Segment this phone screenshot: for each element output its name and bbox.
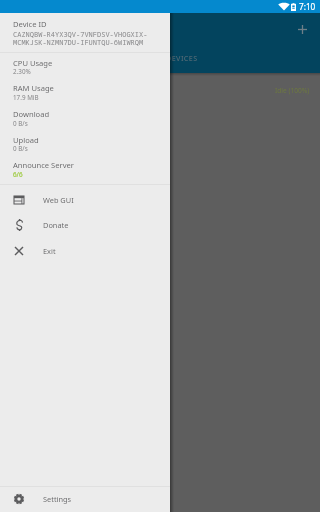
staticText: Donate (43, 220, 69, 230)
button[interactable]: Add device (291, 18, 314, 41)
staticText: 17.9 MiB (13, 93, 39, 102)
button[interactable]: Settings (0, 486, 170, 511)
button[interactable]: DEVICES (136, 46, 228, 70)
staticText: DEVICES (166, 53, 198, 63)
button[interactable]: Exit (0, 238, 170, 263)
staticText: Web GUI (43, 195, 74, 205)
staticText: Device ID (13, 19, 47, 29)
staticText: 0 B/s (13, 119, 28, 128)
staticText: CAZNQBW-R4YX3QV-7VNFDSV-VHOGXIX- MCMKJSK… (13, 30, 148, 47)
staticText: 7:10 (299, 1, 316, 12)
staticText: 0 B/s (13, 144, 28, 153)
staticText: Announce Server (13, 160, 74, 170)
staticText: CPU Usage (13, 58, 53, 68)
button[interactable]: Web GUI (0, 187, 170, 212)
staticText: 2.30% (13, 67, 31, 76)
button[interactable]: Donate (0, 212, 170, 237)
staticText: Idle (100%) (275, 86, 310, 95)
button[interactable]: Device ID (0, 13, 170, 51)
staticText: Settings (43, 494, 72, 504)
staticText: Download (13, 109, 50, 119)
staticText: Exit (43, 246, 56, 256)
staticText: Upload (13, 135, 39, 145)
staticText: 6/6 (13, 170, 23, 179)
staticText: RAM Usage (13, 83, 54, 93)
button[interactable]: Close navigation drawer (170, 13, 320, 512)
